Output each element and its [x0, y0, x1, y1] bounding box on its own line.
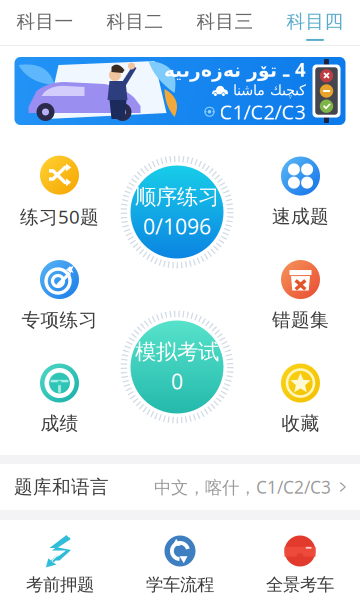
button[interactable]: 考前押题 [0, 523, 120, 597]
staticText: 中文，喀什，C1/C2/C3 [154, 475, 331, 498]
staticText: 错题集 [272, 308, 329, 331]
button[interactable]: 学车流程 [120, 523, 240, 597]
staticText: 科目四 [286, 10, 343, 33]
button[interactable]: 错题集 [241, 259, 359, 331]
staticText: 专项练习 [21, 308, 97, 331]
button[interactable]: 练习50题 [0, 155, 118, 229]
staticText: C1/C2/C3 [219, 98, 305, 125]
button[interactable]: 顺序练习 [121, 156, 233, 268]
staticText: 顺序练习 [135, 184, 219, 210]
button[interactable]: 收藏 [241, 363, 359, 435]
button[interactable]: 成绩 [0, 363, 118, 435]
staticText: 科目一 [16, 10, 73, 33]
staticText: 成绩 [40, 412, 78, 435]
button[interactable]: 模拟考试 [121, 311, 233, 423]
staticText: 题库和语言 [14, 475, 109, 498]
staticText: 全景考车 [266, 574, 334, 595]
button[interactable]: 全景考车 [240, 523, 360, 597]
button[interactable]: 科目四 [270, 0, 360, 46]
button[interactable]: 4 ـ تۆر نەزەرىيە [14, 57, 345, 125]
button[interactable]: 科目一 [0, 0, 90, 46]
staticText: 科目二 [106, 10, 163, 33]
staticText: 0/1096 [143, 212, 211, 240]
staticText: 练习50题 [20, 204, 99, 229]
staticText: 速成题 [272, 205, 329, 228]
staticText: 0 [171, 367, 183, 395]
staticText: 考前押题 [26, 574, 94, 595]
staticText: 收藏 [281, 412, 319, 435]
button[interactable]: 专项练习 [0, 259, 118, 331]
button[interactable]: 速成题 [241, 156, 359, 228]
staticText: كىچىك ماشنا [232, 82, 305, 98]
staticText: 学车流程 [146, 574, 214, 595]
button[interactable]: 题库和语言 [0, 464, 360, 510]
staticText: 模拟考试 [135, 339, 219, 365]
staticText: 4 ـ تۆر نەزەرىيە [163, 57, 305, 82]
button[interactable]: 科目二 [90, 0, 180, 46]
staticText: 科目三 [196, 10, 253, 33]
button[interactable]: 科目三 [180, 0, 270, 46]
